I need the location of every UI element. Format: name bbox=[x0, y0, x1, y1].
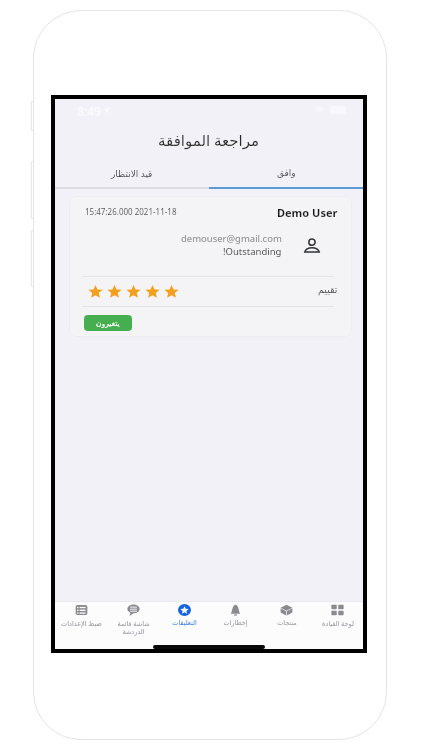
button[interactable]: إخطارات bbox=[210, 604, 261, 636]
button[interactable]: قيد الانتظار bbox=[55, 159, 209, 187]
staticText: قيد الانتظار bbox=[111, 167, 153, 179]
button[interactable]: التعليقات bbox=[159, 604, 210, 636]
staticText: 15:47:26.000 2021-11-18 bbox=[85, 206, 177, 217]
button[interactable]: ضبط الإعدادات bbox=[55, 604, 107, 636]
staticText: demouser@gmail.com bbox=[181, 232, 282, 245]
staticText: 8:49 bbox=[77, 103, 101, 119]
staticText: مراجعة الموافقة bbox=[158, 130, 260, 150]
staticText: إخطارات bbox=[223, 619, 248, 627]
staticText: شاشة قائمة الدردشة bbox=[117, 619, 150, 636]
button[interactable]: لوحة القيادة bbox=[312, 604, 363, 636]
button[interactable]: منتجات bbox=[261, 604, 312, 636]
staticText: تقييم bbox=[318, 284, 338, 295]
button[interactable]: وافق bbox=[209, 159, 363, 187]
staticText: يتغيرون bbox=[96, 319, 120, 328]
button[interactable]: يتغيرون bbox=[84, 315, 132, 331]
staticText: وافق bbox=[277, 168, 296, 178]
staticText: التعليقات bbox=[172, 619, 197, 627]
staticText: ضبط الإعدادات bbox=[61, 619, 102, 628]
staticText: لوحة القيادة bbox=[322, 619, 354, 628]
staticText: !Outstanding bbox=[223, 245, 282, 258]
button[interactable]: شاشة قائمة الدردشة bbox=[107, 604, 159, 636]
staticText: منتجات bbox=[277, 619, 297, 627]
staticText: Demo User bbox=[277, 205, 338, 220]
